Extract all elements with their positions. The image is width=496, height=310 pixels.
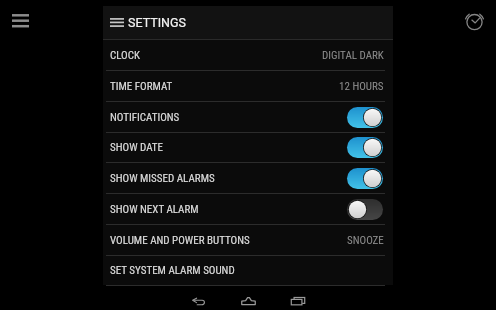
staticText: VOLUME AND POWER BUTTONS — [110, 234, 250, 247]
button[interactable]: Recent apps — [284, 286, 312, 310]
staticText: TIME FORMAT — [110, 80, 173, 93]
staticText: SETTINGS — [128, 15, 186, 30]
button[interactable]: TIME FORMAT — [103, 71, 393, 101]
staticText: 12 HOURS — [339, 80, 384, 93]
button[interactable]: Home — [234, 286, 262, 310]
button[interactable]: Alarm — [462, 9, 487, 34]
button[interactable]: VOLUME AND POWER BUTTONS — [103, 225, 393, 255]
staticText: CLOCK — [110, 49, 140, 62]
staticText: SNOOZE — [347, 234, 384, 247]
staticText: DIGITAL DARK — [322, 49, 384, 62]
button[interactable]: NOTIFICATIONS — [103, 102, 393, 132]
button[interactable]: SHOW MISSED ALARMS — [103, 163, 393, 193]
button[interactable]: SHOW DATE — [103, 133, 393, 162]
button[interactable]: Back — [184, 286, 212, 310]
staticText: SHOW MISSED ALARMS — [110, 172, 215, 185]
button[interactable]: SETTINGS — [103, 6, 393, 39]
button[interactable]: SET SYSTEM ALARM SOUND — [103, 256, 393, 285]
button[interactable]: SHOW NEXT ALARM — [103, 194, 393, 224]
staticText: SHOW NEXT ALARM — [110, 203, 199, 216]
staticText: SET SYSTEM ALARM SOUND — [110, 264, 235, 277]
button[interactable]: Open navigation drawer — [4, 7, 37, 33]
button[interactable]: CLOCK — [103, 40, 393, 70]
staticText: NOTIFICATIONS — [110, 111, 180, 124]
staticText: SHOW DATE — [110, 141, 164, 154]
